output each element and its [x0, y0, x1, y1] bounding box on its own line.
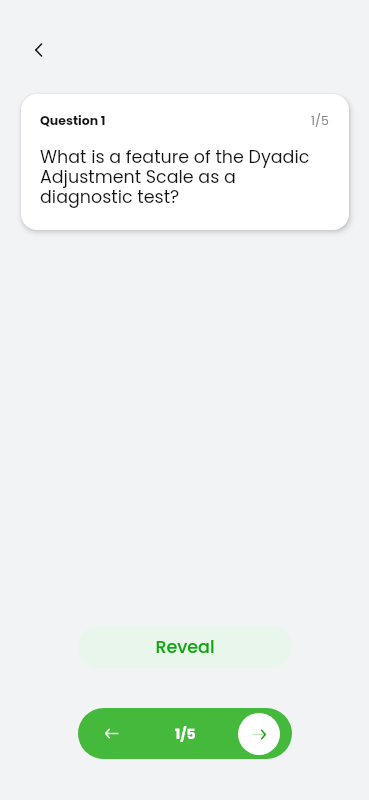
button[interactable]: Previous question — [78, 708, 144, 759]
button[interactable]: Back — [23, 34, 55, 66]
button[interactable]: Reveal — [78, 626, 292, 668]
button[interactable]: Question 1 — [21, 94, 349, 230]
staticText: Question 1 — [40, 112, 106, 129]
staticText: What is a feature of the Dyadic Adjustme… — [40, 148, 310, 208]
staticText: 1/5 — [175, 724, 196, 744]
staticText: Reveal — [155, 635, 215, 660]
button[interactable]: Next question — [238, 713, 280, 755]
staticText: 1/5 — [311, 112, 329, 129]
